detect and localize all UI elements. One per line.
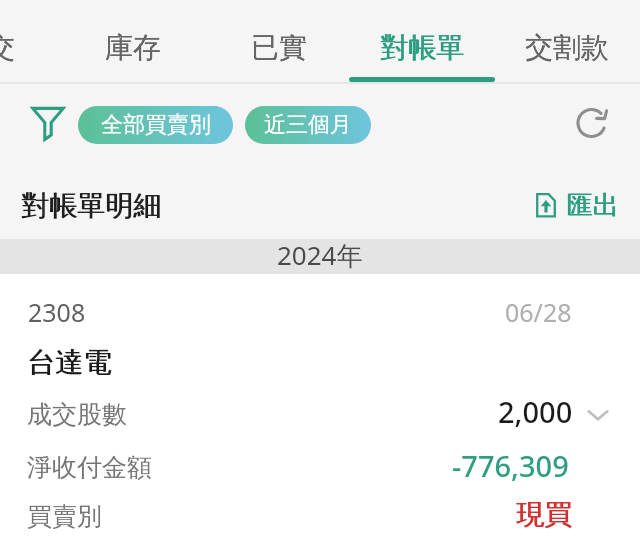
staticText: 成交 (0, 30, 15, 65)
staticText: 交割款 (525, 30, 609, 65)
staticText: 已實 (251, 30, 307, 65)
staticText: -776,309 (452, 446, 569, 485)
button[interactable]: 全部買賣別 (78, 106, 233, 144)
staticText: 現買 (517, 497, 573, 532)
button[interactable]: 對帳單 (349, 0, 494, 82)
staticText: 成交股數 (27, 399, 127, 430)
button[interactable]: Expand (585, 402, 611, 428)
staticText: 2024年 (277, 237, 363, 272)
staticText: 2,000 (498, 392, 573, 431)
staticText: 匯出 (567, 189, 619, 222)
staticText: 台達電 (28, 345, 112, 380)
staticText: 對帳單明細 (22, 188, 162, 223)
staticText: 現買 (516, 497, 572, 532)
staticText: 庫存 (105, 30, 161, 65)
staticText: 成交 (0, 30, 15, 65)
staticText: 庫存 (105, 30, 161, 65)
staticText: 淨收付金額 (27, 452, 152, 483)
staticText: 台達電 (27, 345, 111, 380)
button[interactable]: 庫存 (60, 0, 205, 82)
staticText: 已實 (251, 30, 307, 65)
staticText: 2308 (28, 295, 86, 329)
staticText: 全部買賣別 (101, 111, 211, 139)
staticText: 對帳單 (380, 30, 464, 65)
button[interactable]: 近三個月 (245, 106, 371, 144)
staticText: 交割款 (525, 30, 609, 65)
button[interactable]: 交割款 (494, 0, 639, 82)
button[interactable]: Refresh (569, 100, 617, 148)
staticText: 匯出 (566, 189, 618, 222)
button[interactable]: 成交 (0, 0, 59, 82)
button[interactable]: 匯出 (530, 185, 624, 226)
staticText: 對帳單明細 (21, 188, 161, 223)
staticText: 對帳單 (381, 30, 465, 65)
staticText: 06/28 (505, 295, 572, 329)
button[interactable]: 已實 (206, 0, 351, 82)
staticText: 買賣別 (27, 501, 102, 532)
staticText: 近三個月 (264, 111, 352, 139)
button[interactable]: Filter (24, 100, 72, 148)
